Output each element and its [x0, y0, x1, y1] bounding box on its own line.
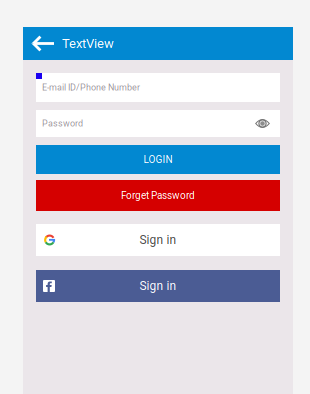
- button[interactable]: Show password: [251, 114, 274, 133]
- staticText: Sign in: [139, 279, 176, 293]
- staticText: LOGIN: [143, 154, 172, 165]
- button[interactable]: Forget Password: [36, 180, 280, 211]
- staticText: Forget Password: [121, 190, 195, 201]
- button[interactable]: Sign in: [36, 270, 280, 302]
- staticText: E-mail ID/Phone Number: [42, 82, 140, 93]
- staticText: Password: [42, 118, 83, 129]
- button[interactable]: Sign in: [36, 224, 280, 256]
- button[interactable]: Back: [23, 27, 62, 60]
- staticText: TextView: [62, 36, 114, 51]
- staticText: Sign in: [139, 233, 176, 247]
- button[interactable]: LOGIN: [36, 145, 280, 174]
